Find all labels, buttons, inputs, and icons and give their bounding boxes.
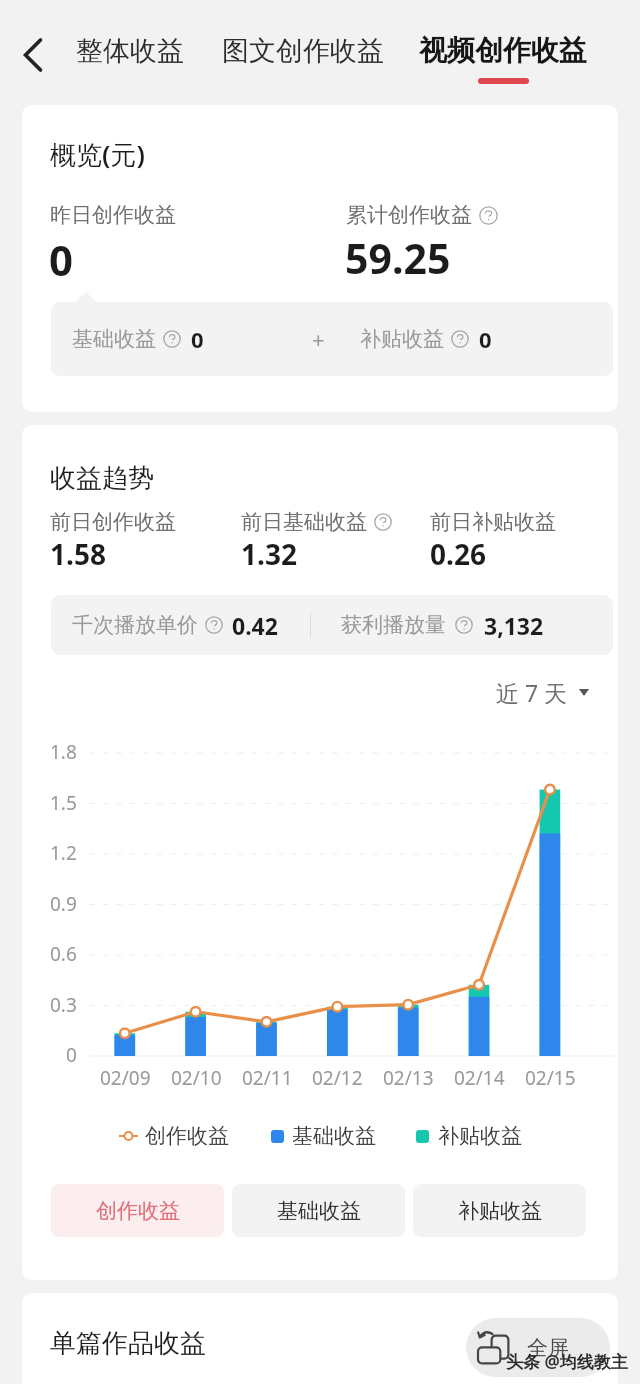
staticText: 02/14 [454,1065,505,1091]
button[interactable]: Back [4,27,60,83]
staticText: 0 [66,1042,77,1068]
staticText: 前日补贴收益 [430,509,556,535]
staticText: 单篇作品收益 [50,1327,206,1360]
staticText: 整体收益 [76,34,184,68]
staticText: 补贴收益 [360,326,444,352]
button[interactable]: 整体收益 [68,28,192,74]
staticText: 0.3 [50,992,77,1018]
staticText: 02/09 [100,1065,151,1091]
staticText: 0.42 [232,610,278,641]
staticText: 基础收益 [292,1123,376,1149]
button[interactable]: 视频创作收益 [411,27,595,90]
staticText: 3,132 [484,610,544,641]
staticText: 累计创作收益 [346,202,472,228]
staticText: 全屏 [527,1335,569,1361]
staticText: 0 [191,324,204,354]
staticText: 59.25 [345,230,451,286]
staticText: 1.2 [50,840,77,866]
staticText: 0.9 [50,891,77,917]
staticText: 02/12 [312,1065,363,1091]
staticText: 1.32 [241,535,297,573]
staticText: 基础收益 [277,1198,361,1224]
staticText: 前日基础收益 [241,509,367,535]
staticText: 昨日创作收益 [50,202,176,228]
staticText: + [312,324,325,354]
button[interactable]: 基础收益 [232,1184,405,1237]
button[interactable]: 全屏 [466,1318,610,1377]
staticText: 02/11 [242,1065,293,1091]
staticText: 0 [479,324,492,354]
staticText: 概览(元) [50,136,145,172]
staticText: 0.26 [430,535,486,573]
staticText: 1.58 [50,535,106,573]
button[interactable]: 图文创作收益 [214,28,392,74]
staticText: 补贴收益 [438,1123,522,1149]
staticText: 0.6 [50,941,77,967]
staticText: 近 7 天 [496,677,568,708]
staticText: 收益趋势 [50,462,154,495]
staticText: 图文创作收益 [222,34,384,68]
button[interactable]: 创作收益 [51,1184,224,1237]
staticText: 0 [49,231,74,288]
staticText: 02/10 [171,1065,222,1091]
staticText: 前日创作收益 [50,509,176,535]
staticText: 02/13 [383,1065,434,1091]
staticText: 头条 @均线教主 [506,1350,628,1373]
staticText: 创作收益 [145,1123,229,1149]
staticText: 1.8 [50,739,77,765]
button[interactable]: 补贴收益 [413,1184,586,1237]
staticText: 基础收益 [72,326,156,352]
button[interactable]: 近 7 天 [490,671,595,714]
staticText: 02/15 [525,1065,576,1091]
staticText: 补贴收益 [458,1198,542,1224]
staticText: 获利播放量 [341,612,446,638]
staticText: 视频创作收益 [419,33,587,68]
staticText: 1.5 [50,790,77,816]
staticText: 千次播放单价 [72,612,198,638]
staticText: 创作收益 [96,1198,180,1224]
